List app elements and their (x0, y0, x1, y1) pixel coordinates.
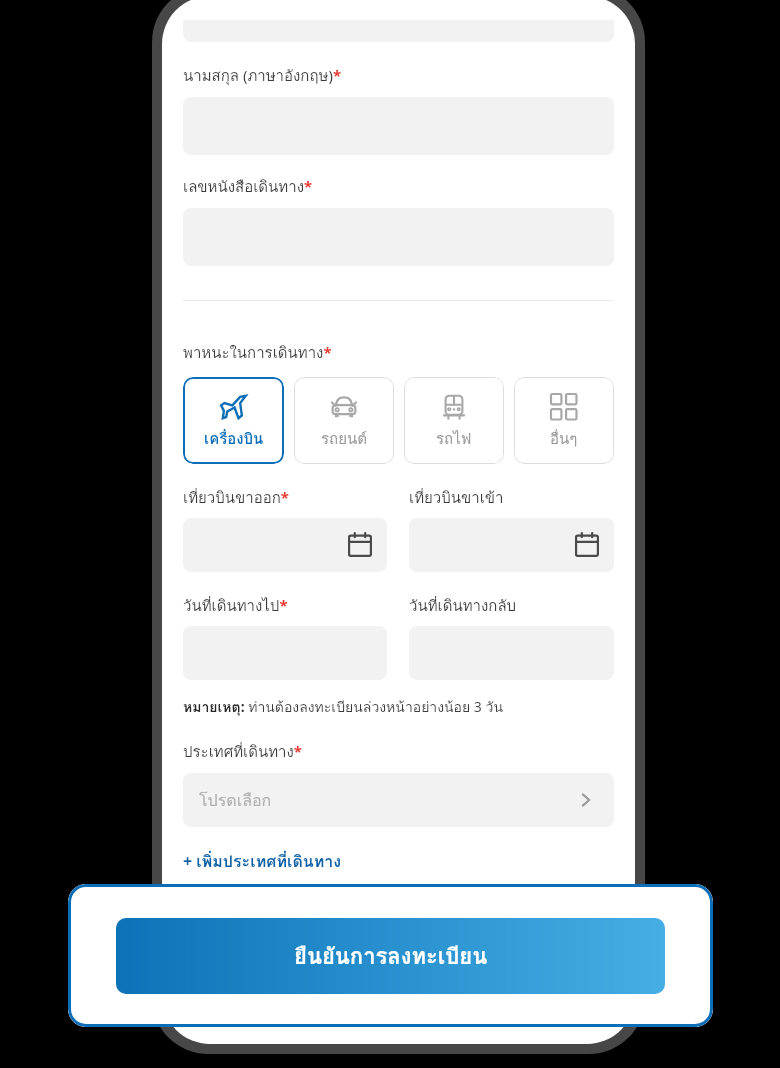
button[interactable]: Pick date (183, 518, 387, 572)
staticText: รถยนต์ (321, 427, 367, 451)
staticText: รถไฟ (436, 427, 472, 451)
staticText: ประเทศที่เดินทาง* (183, 740, 302, 764)
staticText: พาหนะในการเดินทาง* (183, 341, 332, 365)
button[interactable]: + เพิ่มประเทศที่เดินทาง (183, 849, 342, 874)
staticText: หมายเหตุ: ท่านต้องลงทะเบียนล่วงหน้าอย่าง… (183, 696, 503, 718)
staticText: เที่ยวบินขาออก* (183, 486, 289, 510)
staticText: เที่ยวบินขาเข้า (409, 486, 504, 510)
staticText: + เพิ่มประเทศที่เดินทาง (183, 849, 342, 874)
staticText: เครื่องบิน (204, 427, 264, 451)
staticText: โปรดเลือก (199, 788, 272, 813)
button[interactable]: ยืนยันการลงทะเบียน (116, 918, 665, 994)
staticText: วันที่เดินทางกลับ (409, 594, 517, 618)
button[interactable]: Pick date (574, 532, 600, 558)
button[interactable]: เครื่องบิน (183, 377, 284, 464)
button[interactable]: Pick date (347, 532, 373, 558)
button[interactable]: โปรดเลือก (183, 773, 614, 827)
button[interactable]: อื่นๆ (514, 377, 614, 464)
staticText: ยืนยันการลงทะเบียน (294, 939, 488, 974)
staticText: วันที่เดินทางไป* (183, 594, 288, 618)
staticText: เลขหนังสือเดินทาง* (183, 175, 313, 199)
button[interactable]: รถยนต์ (294, 377, 394, 464)
staticText: นามสกุล (ภาษาอังกฤษ)* (183, 64, 342, 88)
button[interactable]: รถไฟ (404, 377, 504, 464)
staticText: อื่นๆ (550, 427, 578, 451)
button[interactable]: Pick date (409, 518, 614, 572)
